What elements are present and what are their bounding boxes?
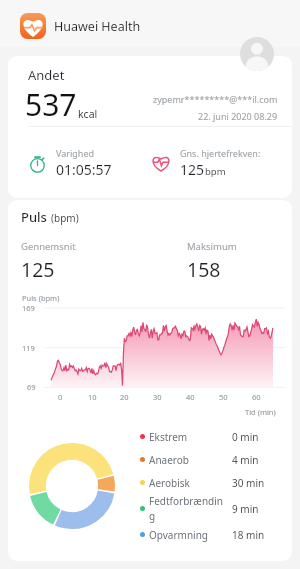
- staticText: 158: [187, 256, 221, 283]
- staticText: Gennemsnit: [21, 240, 76, 253]
- staticText: 0: [58, 392, 63, 402]
- staticText: 0 min: [232, 430, 259, 444]
- staticText: 4 min: [232, 453, 259, 467]
- staticText: 30: [153, 392, 162, 402]
- staticText: 30 min: [232, 476, 265, 490]
- staticText: Varighed: [56, 147, 95, 159]
- staticText: 60: [252, 392, 261, 402]
- staticText: Opvarmning: [149, 528, 224, 542]
- staticText: Puls: [21, 208, 47, 226]
- button[interactable]: Opvarmning: [140, 523, 284, 546]
- staticText: 169: [22, 303, 35, 313]
- staticText: 125: [21, 256, 55, 283]
- staticText: 119: [22, 343, 35, 353]
- staticText: Aerobisk: [149, 476, 224, 490]
- button[interactable]: Aerobisk: [140, 471, 284, 494]
- staticText: Maksimum: [187, 240, 237, 253]
- staticText: Anaerob: [149, 453, 224, 467]
- staticText: kcal: [78, 107, 98, 121]
- staticText: 537: [25, 84, 77, 125]
- button[interactable]: Fedtforbrænding: [140, 494, 284, 523]
- button[interactable]: Anaerob: [140, 448, 284, 471]
- button[interactable]: Ekstrem: [140, 425, 284, 448]
- staticText: 18 min: [232, 528, 265, 542]
- staticText: 69: [27, 382, 36, 392]
- staticText: 9 min: [232, 502, 259, 516]
- staticText: 20: [120, 392, 129, 402]
- staticText: Fedtforbrænding: [149, 494, 224, 523]
- staticText: 50: [219, 392, 228, 402]
- staticText: 125: [180, 160, 205, 179]
- staticText: Ekstrem: [149, 430, 224, 444]
- staticText: (bpm): [51, 211, 79, 225]
- button[interactable]: Profile: [240, 37, 274, 71]
- staticText: Tid (min): [245, 407, 276, 417]
- staticText: 01:05:57: [56, 160, 112, 179]
- staticText: zypemr*********@***il.com: [153, 93, 278, 105]
- staticText: Andet: [28, 66, 65, 84]
- staticText: 10: [88, 392, 97, 402]
- button[interactable]: Huawei Health: [0, 0, 300, 47]
- staticText: Gns. hjertefrekven:: [180, 147, 261, 159]
- staticText: Puls (bpm): [22, 293, 60, 303]
- staticText: 40: [186, 392, 195, 402]
- staticText: Huawei Health: [54, 18, 141, 35]
- staticText: bpm: [205, 165, 226, 178]
- staticText: 22. juni 2020 08.29: [198, 110, 278, 122]
